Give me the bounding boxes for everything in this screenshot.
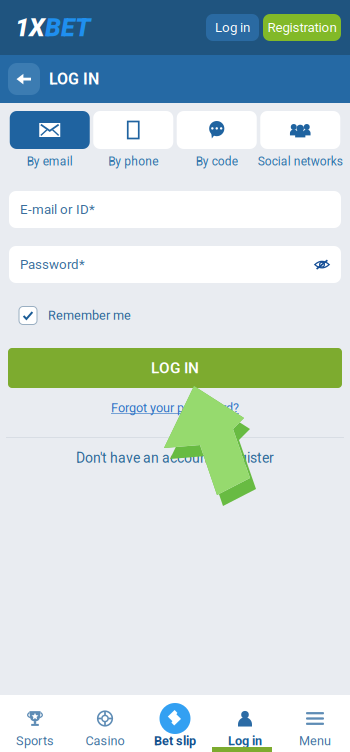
- button[interactable]: Remember me: [0, 283, 350, 348]
- button[interactable]: Log in: [206, 14, 259, 41]
- staticText: Casino: [85, 734, 124, 748]
- staticText: Remember me: [48, 308, 131, 323]
- staticText: Log in: [228, 734, 262, 748]
- button[interactable]: Show password: [314, 259, 330, 270]
- button[interactable]: By email: [10, 111, 90, 168]
- staticText: LOG IN: [151, 359, 199, 377]
- staticText: Sports: [16, 734, 54, 748]
- staticText: Registration: [267, 20, 336, 35]
- button[interactable]: Don't have an account? Register: [76, 447, 274, 469]
- staticText: By email: [27, 154, 73, 169]
- staticText: Don't have an account? Register: [76, 450, 274, 466]
- button[interactable]: Back: [8, 63, 40, 95]
- staticText: Bet slip: [154, 734, 196, 748]
- staticText: 1X: [15, 13, 45, 42]
- button[interactable]: Log in: [210, 703, 280, 748]
- staticText: Password*: [20, 257, 85, 272]
- button[interactable]: Bet slip: [140, 703, 210, 748]
- staticText: BET: [45, 13, 90, 42]
- button[interactable]: Social networks: [260, 111, 340, 168]
- button[interactable]: By phone: [93, 111, 173, 168]
- button[interactable]: LOG IN: [8, 348, 342, 388]
- button[interactable]: Registration: [263, 14, 341, 41]
- staticText: Log in: [215, 20, 250, 35]
- staticText: Menu: [299, 734, 331, 748]
- button[interactable]: Casino: [70, 703, 140, 748]
- button[interactable]: Forgot your password?: [111, 397, 239, 419]
- staticText: Social networks: [258, 154, 343, 169]
- staticText: By code: [196, 154, 238, 169]
- button[interactable]: By code: [177, 111, 257, 168]
- staticText: LOG IN: [49, 70, 99, 88]
- staticText: Forgot your password?: [111, 401, 239, 415]
- staticText: E-mail or ID*: [20, 202, 95, 217]
- button[interactable]: Menu: [280, 703, 350, 748]
- staticText: By phone: [108, 154, 158, 169]
- button[interactable]: Sports: [0, 703, 70, 748]
